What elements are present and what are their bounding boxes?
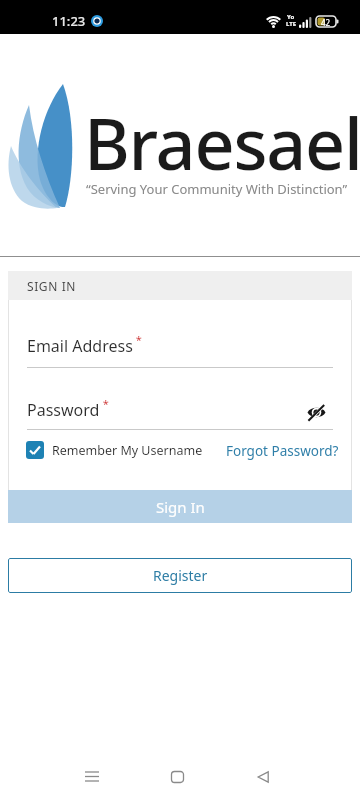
button[interactable] xyxy=(85,771,99,782)
staticText: SIGN IN xyxy=(27,278,77,294)
staticText: Email Address xyxy=(27,335,133,357)
button[interactable]: Sign In xyxy=(8,490,352,523)
staticText: LTE xyxy=(286,20,297,28)
staticText: Sign In xyxy=(156,497,205,517)
staticText: Register xyxy=(153,566,208,585)
button[interactable]: Password xyxy=(27,399,109,421)
staticText: “Serving Your Community With Distinction… xyxy=(86,180,348,198)
staticText: * xyxy=(133,332,142,347)
staticText: 42 xyxy=(321,17,331,28)
staticText: Braesael xyxy=(84,95,360,190)
staticText: Remember My Username xyxy=(52,442,203,459)
staticText: 11:23 xyxy=(52,12,86,30)
button[interactable] xyxy=(257,771,269,783)
button[interactable]: Remember My Username xyxy=(26,441,203,459)
button[interactable]: Register xyxy=(8,558,352,593)
button[interactable] xyxy=(171,771,184,783)
button[interactable] xyxy=(307,403,326,422)
button[interactable]: Forgot Password? xyxy=(226,442,339,460)
button[interactable]: Email Address xyxy=(27,335,142,357)
staticText: * xyxy=(100,396,109,411)
staticText: Password xyxy=(27,399,100,421)
staticText: Yo xyxy=(287,13,295,21)
